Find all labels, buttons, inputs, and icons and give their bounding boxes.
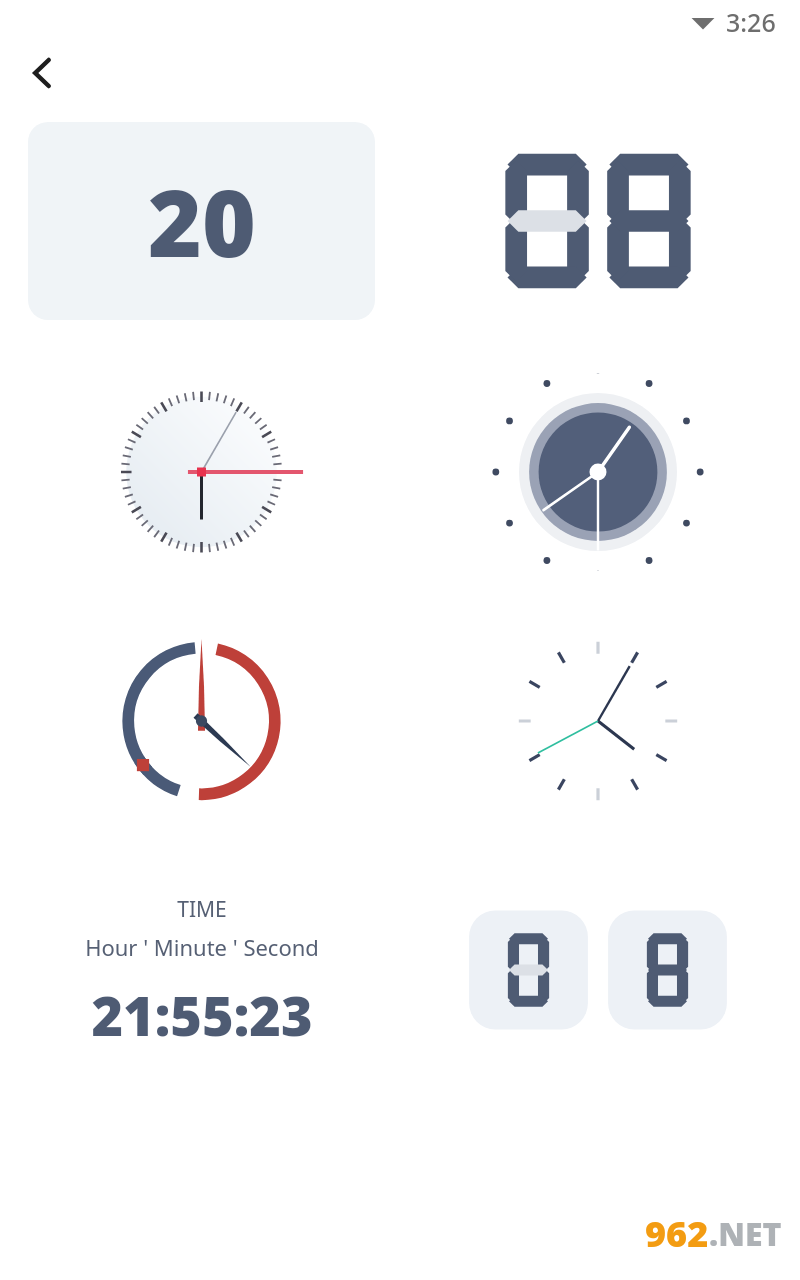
staticText: .NET [709, 1212, 782, 1256]
staticText: 962 [645, 1209, 709, 1258]
button[interactable] [424, 871, 772, 1069]
staticText: TIME [177, 895, 227, 924]
button[interactable] [28, 622, 375, 820]
button[interactable] [424, 122, 772, 320]
staticText: 21:55:23 [91, 978, 313, 1052]
button[interactable]: 20 [28, 122, 375, 320]
button[interactable]: TIME [28, 871, 375, 1069]
staticText: 20 [148, 159, 256, 284]
button[interactable] [28, 373, 375, 571]
button[interactable] [424, 373, 772, 571]
staticText: 3:26 [726, 5, 776, 39]
staticText: Hour ' Minute ' Second [85, 932, 319, 962]
button[interactable]: Back [14, 44, 72, 102]
button[interactable] [424, 622, 772, 820]
